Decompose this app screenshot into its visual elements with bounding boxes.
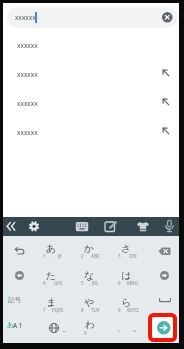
- staticText: TUV: [91, 307, 100, 313]
- button[interactable]: xxxxxx: [3, 88, 179, 117]
- staticText: WXYZ: [127, 307, 139, 313]
- staticText: 記号: [8, 296, 21, 304]
- staticText: MNO: [127, 280, 139, 286]
- button[interactable]: [163, 219, 176, 234]
- button[interactable]: xxxxxx: [3, 59, 179, 88]
- button[interactable]: [75, 220, 89, 233]
- staticText: 0: [84, 330, 87, 336]
- staticText: 。: [133, 323, 141, 333]
- staticText: や: [84, 296, 95, 309]
- staticText: わ: [85, 318, 96, 331]
- staticText: か: [84, 242, 95, 255]
- staticText: な: [84, 269, 95, 282]
- button[interactable]: [107, 316, 145, 343]
- button[interactable]: [107, 263, 145, 290]
- staticText: 1: [43, 253, 46, 259]
- staticText: た: [46, 269, 57, 282]
- button[interactable]: [104, 220, 118, 233]
- staticText: xxxxxx: [17, 41, 38, 50]
- staticText: 3: [118, 253, 121, 259]
- button[interactable]: [70, 263, 108, 290]
- staticText: 8: [81, 307, 84, 313]
- button[interactable]: xxxxxx: [3, 30, 179, 59]
- button[interactable]: [5, 219, 18, 234]
- staticText: PQRS: [52, 307, 64, 313]
- button[interactable]: [150, 236, 179, 263]
- button[interactable]: [162, 12, 173, 23]
- staticText: GHI: [54, 280, 63, 286]
- button[interactable]: [136, 220, 150, 233]
- button[interactable]: [3, 316, 32, 343]
- button[interactable]: [70, 236, 108, 263]
- staticText: ま: [46, 296, 57, 309]
- button[interactable]: [27, 219, 41, 234]
- staticText: ABC: [91, 253, 100, 259]
- button[interactable]: [3, 290, 32, 317]
- staticText: 2: [81, 253, 84, 259]
- staticText: xxxxxx: [17, 70, 38, 79]
- staticText: . @: [55, 253, 62, 259]
- button[interactable]: [3, 263, 32, 290]
- staticText: 6: [118, 280, 121, 286]
- staticText: A 1: [13, 321, 23, 329]
- staticText: あ: [7, 321, 14, 329]
- staticText: 、: [117, 323, 125, 333]
- staticText: xxxxxx: [15, 13, 36, 22]
- staticText: ー: [62, 329, 67, 335]
- staticText: 7: [43, 307, 46, 313]
- staticText: 5: [81, 280, 84, 286]
- button[interactable]: [32, 316, 70, 343]
- staticText: は: [121, 269, 132, 282]
- button[interactable]: [32, 263, 70, 290]
- button[interactable]: [157, 321, 171, 335]
- button[interactable]: [70, 290, 108, 317]
- button[interactable]: [107, 236, 145, 263]
- button[interactable]: xxxxxx: [7, 7, 178, 28]
- staticText: JKL: [92, 280, 99, 286]
- button[interactable]: [70, 316, 108, 343]
- staticText: xxxxxx: [17, 128, 38, 137]
- button[interactable]: [32, 290, 70, 317]
- button[interactable]: [107, 290, 145, 317]
- staticText: 9: [118, 307, 121, 313]
- staticText: ら: [121, 296, 132, 309]
- button[interactable]: xxxxxx: [3, 117, 179, 146]
- staticText: 4: [43, 280, 46, 286]
- button[interactable]: [150, 290, 179, 317]
- staticText: xxxxxx: [17, 99, 38, 108]
- staticText: DEF: [129, 253, 138, 259]
- staticText: さ: [121, 242, 132, 255]
- button[interactable]: [32, 236, 70, 263]
- staticText: あ: [46, 242, 57, 255]
- button[interactable]: [150, 263, 179, 290]
- button[interactable]: [3, 236, 32, 263]
